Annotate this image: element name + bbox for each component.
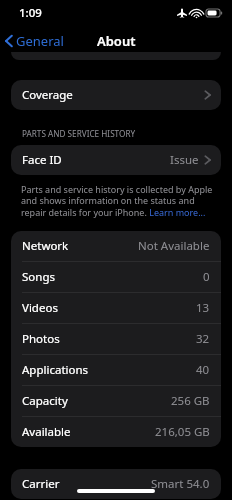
staticText: Available [22,424,71,440]
staticText: 1:09 [19,5,42,21]
button[interactable]: Capacity [11,386,221,417]
button[interactable]: General [0,29,70,53]
staticText: PARTS AND SERVICE HISTORY [22,128,136,139]
staticText: Network [22,238,69,254]
staticText: 256 GB [171,393,210,409]
button[interactable]: Network [11,231,221,262]
staticText: Photos [22,331,60,347]
button[interactable]: Available [11,417,221,447]
button[interactable]: Applications [11,355,221,386]
staticText: Parts and service history is collected b… [21,183,214,219]
button[interactable]: Photos [11,324,221,355]
button[interactable]: Carrier [11,469,221,499]
staticText: Applications [22,362,89,378]
staticText: Issue [170,152,199,168]
button[interactable]: Coverage [11,80,221,110]
staticText: 216,05 GB [155,424,210,440]
staticText: Coverage [22,87,73,103]
staticText: Smart 54.0 [151,476,210,492]
staticText: Capacity [22,393,68,409]
staticText: Videos [22,300,58,316]
staticText: 13 [196,300,210,316]
button[interactable] [11,52,221,60]
button[interactable]: Songs [11,262,221,293]
staticText: 32 [196,331,210,347]
staticText: General [16,32,64,50]
staticText: About [97,32,136,50]
staticText: Carrier [22,476,60,492]
staticText: Not Available [138,238,210,254]
staticText: 40 [196,362,210,378]
button[interactable]: Videos [11,293,221,324]
button[interactable]: Face ID [11,145,221,175]
staticText: Face ID [22,152,62,168]
staticText: 0 [203,269,210,285]
staticText: Songs [22,269,55,285]
